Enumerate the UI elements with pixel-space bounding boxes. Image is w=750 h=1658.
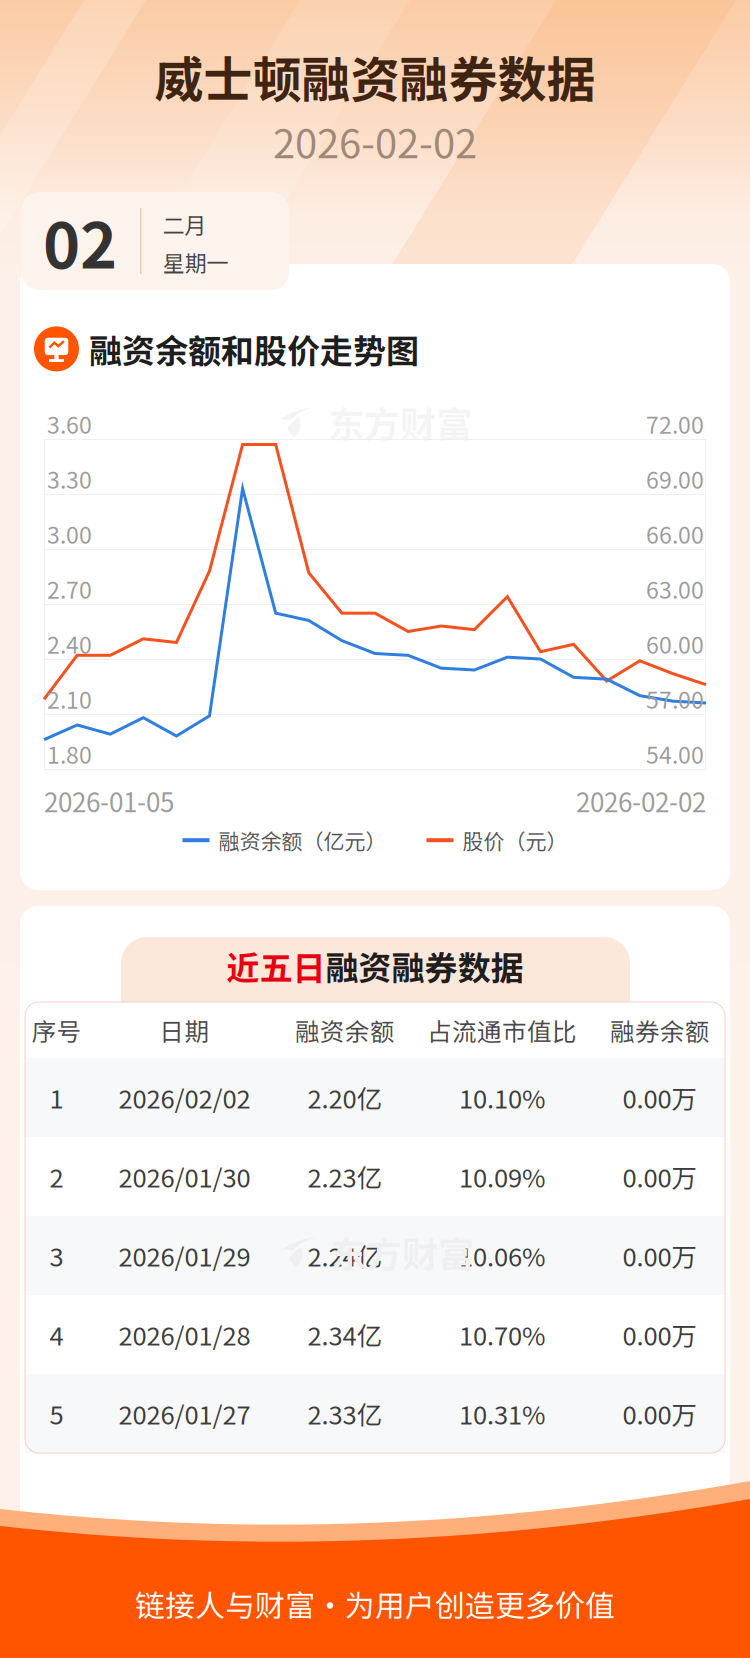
staticText: 10.70% [459,1316,545,1353]
staticText: 3.00 [47,517,92,550]
staticText: 2026-01-05 [44,782,174,820]
staticText: 2026/02/02 [118,1079,250,1116]
staticText: 60.00 [646,627,704,660]
staticText: 69.00 [646,462,704,495]
staticText: 0.00万 [622,1237,697,1274]
staticText: 4 [49,1316,63,1353]
staticText: 2026/01/30 [118,1158,250,1195]
staticText: 72.00 [646,407,704,440]
staticText: 2.33亿 [307,1395,382,1432]
staticText: 东方财富 [328,396,472,448]
staticText: 0.00万 [622,1395,697,1432]
staticText: 2.70 [47,572,92,605]
staticText: 星期一 [162,246,228,278]
staticText: 融券余额 [610,1012,710,1048]
staticText: 2026/01/27 [118,1395,250,1432]
staticText: 10.09% [459,1158,545,1195]
staticText: 序号 [31,1012,81,1048]
staticText: 63.00 [646,572,704,605]
staticText: 股价（元） [462,825,567,855]
staticText: 66.00 [646,517,704,550]
staticText: 融资余额和股价走势图 [89,325,419,373]
staticText: 链接人与财富·为用户创造更多价值 [135,1582,615,1625]
staticText: 10.31% [459,1395,545,1432]
staticText: 54.00 [646,737,704,770]
staticText: 东方财富 [330,1226,474,1278]
staticText: 0.00万 [622,1079,697,1116]
staticText: 2.34亿 [307,1316,382,1353]
staticText: 2.10 [47,682,92,715]
staticText: 10.06% [459,1237,545,1274]
staticText: 2.40 [47,627,92,660]
staticText: 2026/01/29 [118,1237,250,1274]
staticText: 3.60 [47,407,92,440]
staticText: 02 [43,195,117,287]
staticText: 1 [49,1079,63,1116]
staticText: 2.20亿 [307,1079,382,1116]
staticText: 2026-02-02 [576,782,706,820]
staticText: 0.00万 [622,1158,697,1195]
staticText: 日期 [159,1012,209,1048]
staticText: 2.23亿 [307,1158,382,1195]
staticText: 融资余额（亿元） [218,825,386,855]
staticText: 2.24亿 [307,1237,382,1274]
staticText: 融资余额 [295,1012,395,1048]
staticText: 2 [49,1158,63,1195]
staticText: 二月 [162,208,206,240]
staticText: 5 [49,1395,63,1432]
staticText: 近五日 [226,942,325,990]
staticText: 占流通市值比 [427,1012,577,1048]
staticText: 2026/01/28 [118,1316,250,1353]
staticText: 10.10% [459,1079,545,1116]
staticText: 1.80 [47,737,92,770]
staticText: 3.30 [47,462,92,495]
staticText: 融资融券数据 [325,942,523,990]
staticText: 2026-02-02 [273,112,477,170]
staticText: 3 [49,1237,63,1274]
staticText: 威士顿融资融券数据 [154,41,595,112]
staticText: 57.00 [646,682,704,715]
staticText: 0.00万 [622,1316,697,1353]
